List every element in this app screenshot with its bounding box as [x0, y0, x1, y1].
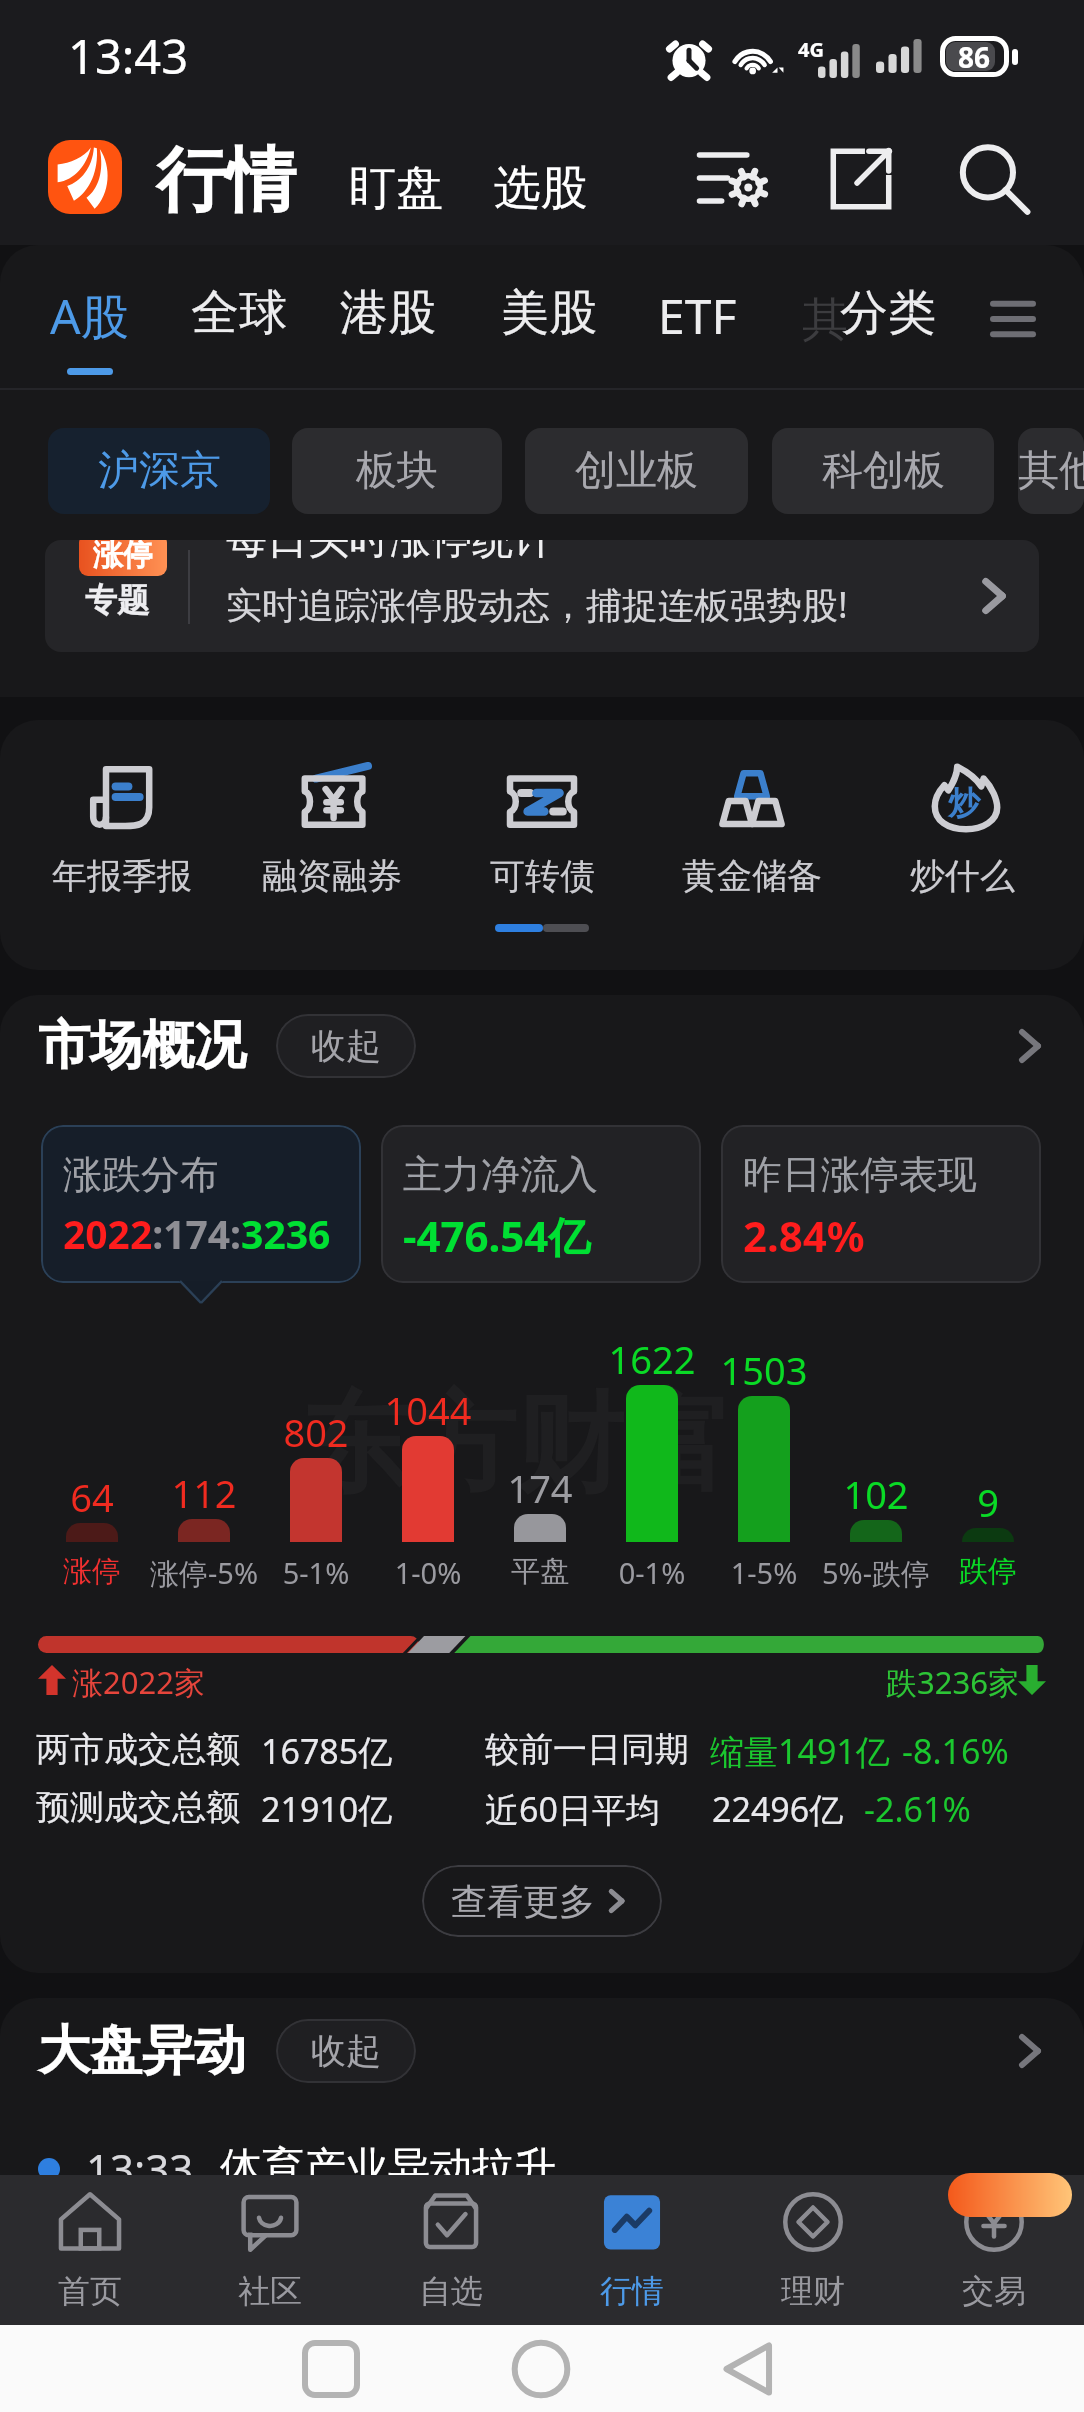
button[interactable]: 主力净流入	[381, 1125, 701, 1283]
button[interactable]: 收起	[276, 1014, 416, 1078]
staticText: 港股	[340, 283, 436, 343]
button[interactable]: 行情	[156, 137, 296, 225]
staticText: 炒什么	[910, 854, 1015, 898]
staticText: 东方财富	[300, 1377, 732, 1513]
staticText: 112	[144, 1467, 264, 1519]
button[interactable]: 涨跌分布	[41, 1125, 361, 1283]
button[interactable]: Share	[828, 146, 894, 212]
staticText: 可转债	[490, 854, 595, 898]
button[interactable]: ETF	[658, 283, 737, 348]
button[interactable]: 首页	[0, 2175, 180, 2325]
staticText: -476.54亿	[403, 1207, 591, 1264]
button[interactable]: A股	[50, 283, 129, 349]
button[interactable]: 盯盘	[349, 159, 443, 218]
staticText: 沪深京	[98, 445, 221, 497]
staticText: 主力净流入	[403, 1150, 598, 1199]
button[interactable]: Filter settings	[698, 144, 772, 212]
staticText: 昨日涨停表现	[743, 1150, 977, 1199]
staticText: 64	[32, 1471, 152, 1523]
button[interactable]: Back	[722, 2341, 778, 2397]
button[interactable]: 交易	[903, 2175, 1084, 2325]
button[interactable]: 收起	[276, 2019, 416, 2083]
staticText: 大盘异动	[38, 2018, 246, 2084]
staticText: 102	[816, 1468, 936, 1520]
button[interactable]: 港股	[340, 283, 436, 343]
staticText: ETF	[658, 283, 737, 348]
staticText: 融资融券	[262, 854, 402, 898]
button[interactable]: 黄金储备	[652, 754, 852, 820]
staticText: 全球	[191, 283, 287, 343]
staticText: 分类	[840, 283, 936, 343]
button[interactable]: 融资融券	[232, 754, 432, 820]
staticText: -2.61%	[864, 1786, 971, 1832]
staticText: 802	[256, 1406, 376, 1458]
button[interactable]: 自选	[360, 2175, 541, 2325]
button[interactable]: 美股	[501, 283, 597, 343]
staticText: 9	[928, 1476, 1048, 1528]
staticText: 174	[480, 1462, 600, 1514]
staticText: 体育产业异动拉升	[220, 2142, 556, 2195]
staticText: 13:43	[68, 24, 189, 88]
staticText: 自选	[419, 2271, 483, 2311]
staticText: 首页	[58, 2271, 122, 2311]
button[interactable]: 昨日涨停表现	[721, 1125, 1041, 1283]
staticText: 0-1%	[592, 1553, 712, 1592]
staticText: 16785亿	[261, 1728, 393, 1774]
staticText: 2022:174:3236	[63, 1207, 331, 1260]
staticText: 每日头时涨停统计	[226, 540, 554, 566]
button[interactable]: 板块	[292, 428, 502, 514]
button[interactable]: Home	[513, 2341, 569, 2397]
staticText: 缩量1491亿	[710, 1728, 890, 1774]
staticText: 1044	[368, 1384, 488, 1436]
staticText: 较前一日同期	[485, 1728, 689, 1771]
button[interactable]: 可转债	[442, 754, 642, 820]
button[interactable]: 科创板	[772, 428, 994, 514]
staticText: 专题	[85, 580, 149, 620]
staticText: 炒	[948, 783, 980, 823]
staticText: 13:33	[86, 2140, 194, 2197]
button[interactable]: Open market overview	[1004, 1021, 1054, 1071]
button[interactable]: Search	[956, 142, 1032, 218]
button[interactable]: 创业板	[525, 428, 748, 514]
button[interactable]: 社区	[180, 2175, 360, 2325]
staticText: 预测成交总额	[36, 1786, 240, 1829]
staticText: 1503	[704, 1344, 824, 1396]
staticText: 平盘	[480, 1553, 600, 1590]
button[interactable]: Recents	[303, 2341, 359, 2397]
button[interactable]: Open market movements	[1004, 2026, 1054, 2076]
button[interactable]: More tabs	[993, 300, 1033, 338]
staticText: 理财	[781, 2271, 845, 2311]
button[interactable]: 行情	[541, 2175, 722, 2325]
staticText: 交易	[962, 2271, 1026, 2311]
button[interactable]	[48, 140, 122, 214]
staticText: 22496亿	[712, 1786, 844, 1832]
staticText: -8.16%	[902, 1728, 1009, 1774]
button[interactable]: 查看更多	[422, 1865, 662, 1937]
button[interactable]: 选股	[494, 159, 588, 218]
button[interactable]: 其他	[1018, 428, 1084, 514]
staticText: 涨停	[93, 540, 153, 574]
staticText: 跌停	[928, 1553, 1048, 1590]
staticText: 创业板	[575, 445, 698, 497]
button[interactable]: 全球	[191, 283, 287, 343]
staticText: 黄金储备	[682, 854, 822, 898]
button[interactable]: 沪深京	[48, 428, 270, 514]
staticText: 4G	[798, 36, 824, 63]
button[interactable]: 分类	[840, 283, 936, 343]
button[interactable]: 理财	[722, 2175, 903, 2325]
button[interactable]: 涨停	[45, 540, 1039, 652]
staticText: 实时追踪涨停股动态，捕捉连板强势股!	[226, 580, 848, 629]
button[interactable]: 炒	[862, 754, 1062, 820]
staticText: 收起	[311, 2029, 381, 2073]
staticText: 1622	[592, 1333, 712, 1385]
staticText: 近60日平均	[485, 1786, 660, 1832]
button[interactable]: 年报季报	[22, 754, 222, 820]
staticText: 收起	[311, 1024, 381, 1068]
staticText: 其	[802, 291, 848, 349]
staticText: 两市成交总额	[36, 1728, 240, 1771]
staticText: A股	[50, 283, 129, 349]
staticText: 市场概况	[38, 1013, 246, 1079]
staticText: 1-0%	[368, 1553, 488, 1592]
staticText: 其他	[1018, 445, 1084, 497]
staticText: 美股	[501, 283, 597, 343]
